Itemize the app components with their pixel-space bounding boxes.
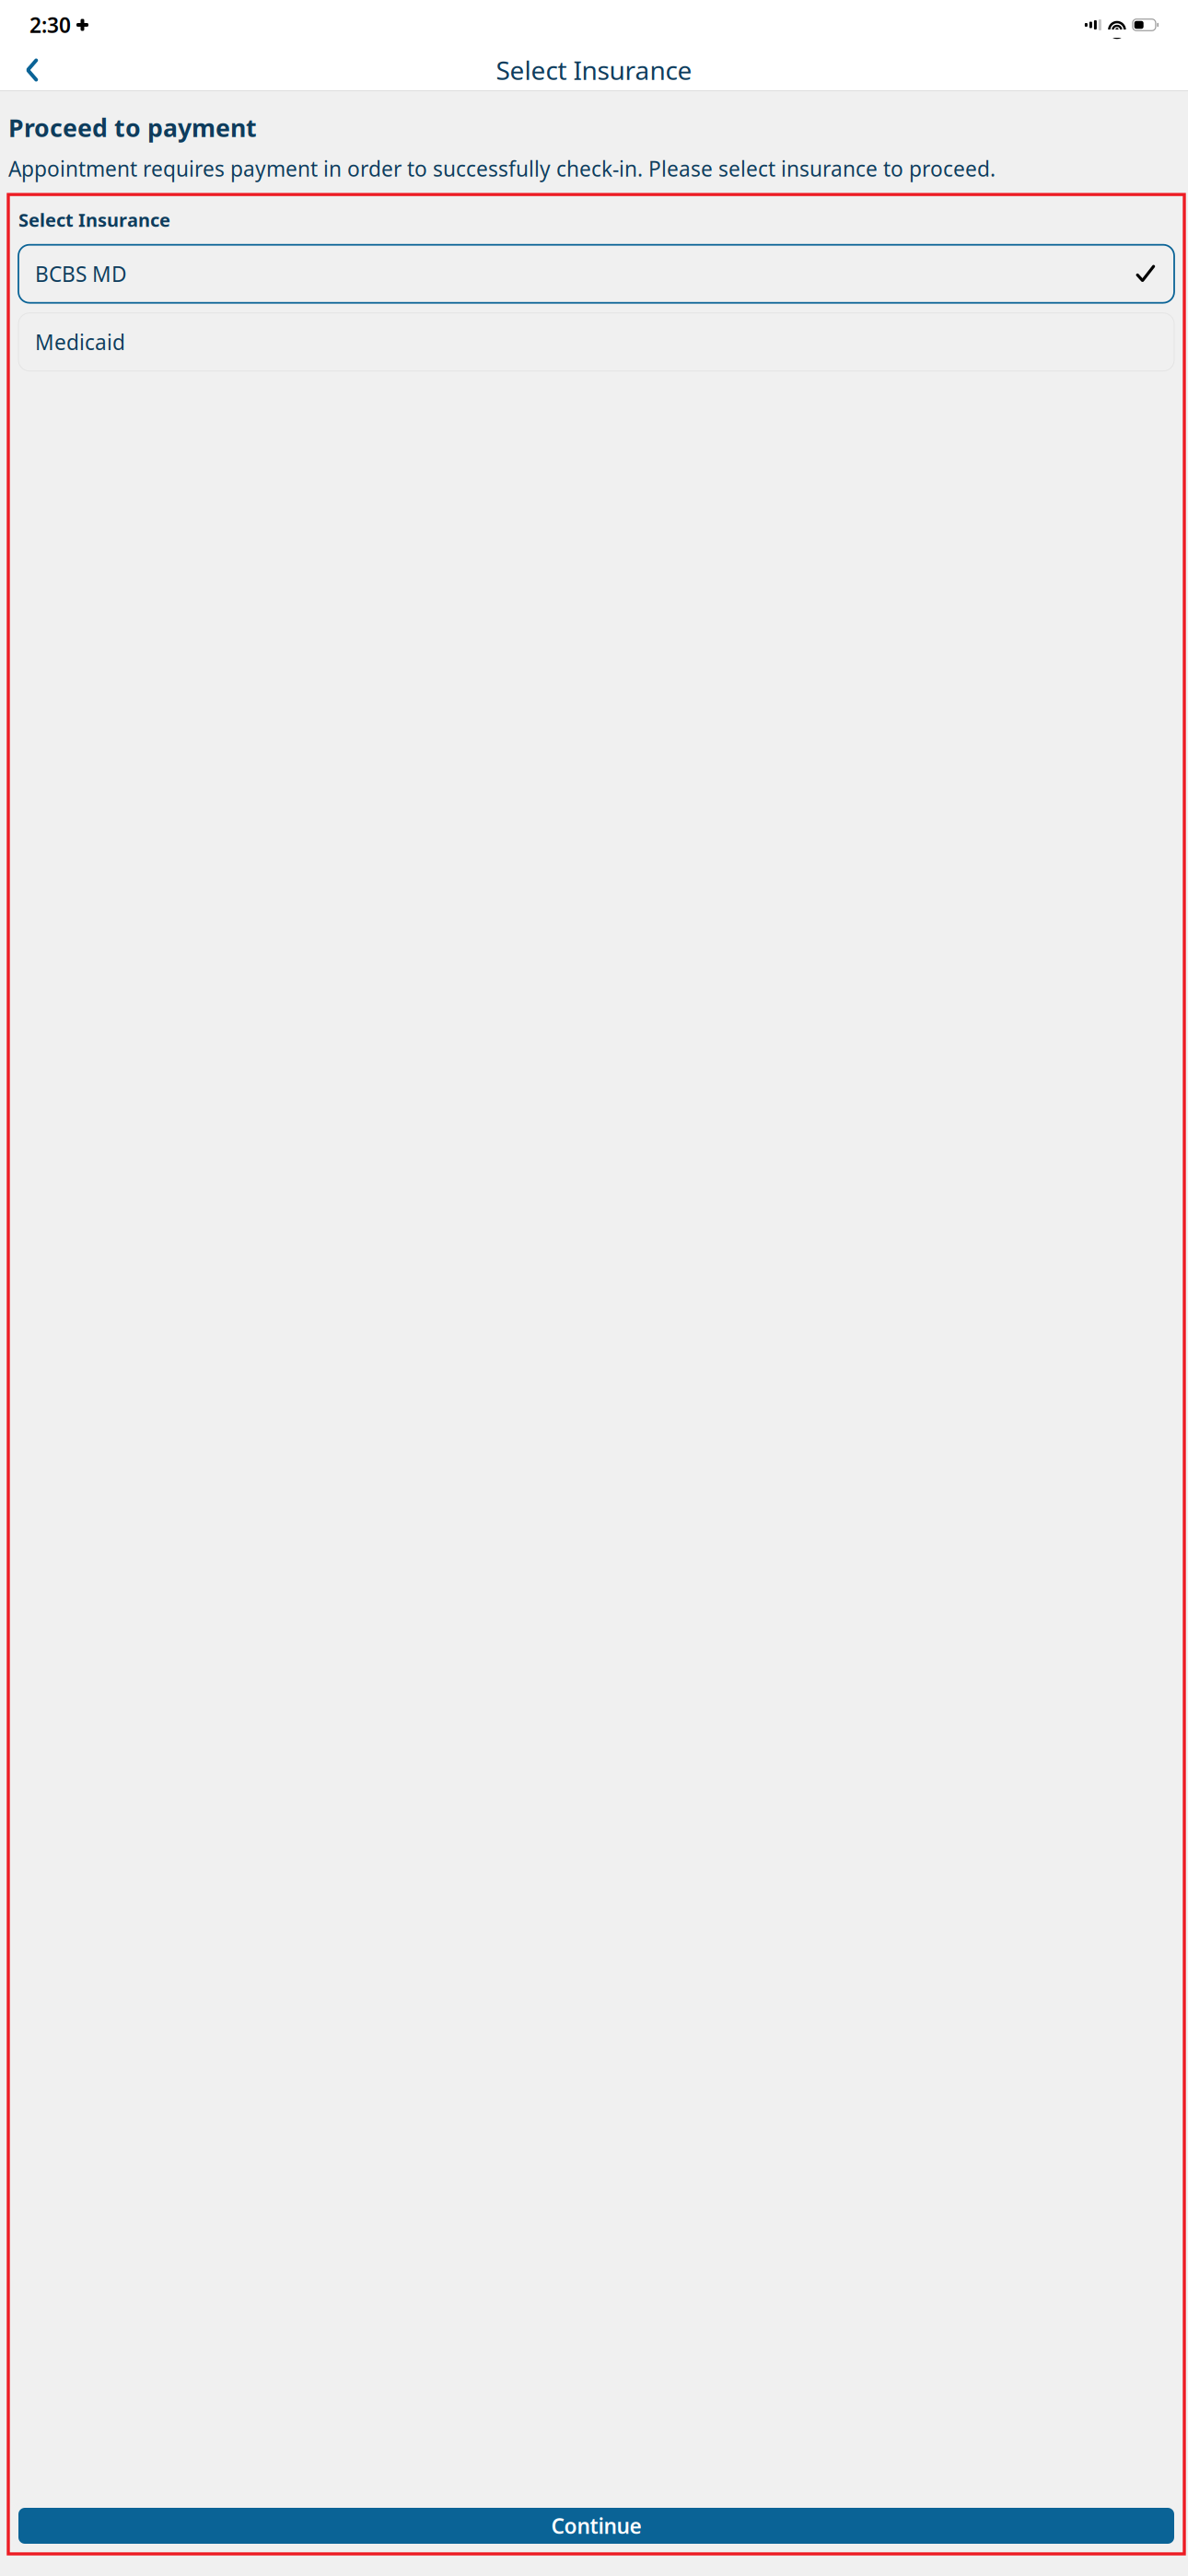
- staticText: Continue: [551, 2512, 641, 2540]
- button[interactable]: Continue: [18, 2508, 1174, 2544]
- staticText: BCBS MD: [35, 260, 127, 288]
- button[interactable]: Medicaid: [18, 313, 1174, 371]
- staticText: Proceed to payment: [8, 111, 257, 144]
- staticText: Select Insurance: [496, 53, 692, 87]
- staticText: Appointment requires payment in order to…: [8, 155, 996, 183]
- staticText: Select Insurance: [18, 207, 170, 232]
- button[interactable]: Back: [11, 49, 53, 91]
- button[interactable]: BCBS MD: [18, 245, 1174, 303]
- staticText: 2:30: [29, 11, 71, 39]
- staticText: Medicaid: [35, 328, 125, 356]
